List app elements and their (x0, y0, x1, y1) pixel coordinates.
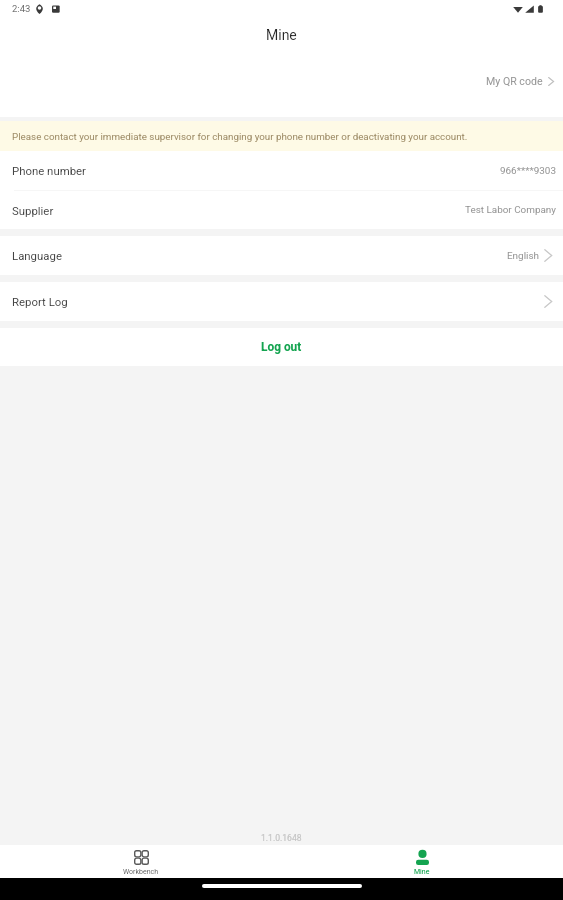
button[interactable]: Log out (0, 328, 563, 366)
button[interactable]: Phone number (0, 151, 563, 190)
staticText: Mine (266, 27, 297, 43)
staticText: Language (12, 249, 62, 262)
staticText: Test Labor Company (465, 204, 556, 216)
button[interactable]: My QR code (486, 72, 563, 90)
staticText: Report Log (12, 295, 68, 308)
staticText: Mine (414, 868, 430, 876)
button[interactable]: Language (0, 236, 563, 275)
staticText: English (507, 250, 539, 262)
button[interactable]: Workbench tab (0, 845, 281, 878)
staticText: Please contact your immediate supervisor… (12, 131, 468, 142)
button[interactable]: Mine tab (281, 845, 563, 878)
staticText: 2:43 (12, 3, 31, 14)
staticText: Workbench (123, 868, 159, 876)
staticText: My QR code (486, 75, 543, 87)
staticText: Phone number (12, 164, 86, 177)
staticText: 966****9303 (500, 165, 556, 177)
button[interactable]: Supplier (0, 191, 563, 229)
staticText: Supplier (12, 204, 54, 217)
button[interactable]: Report Log (0, 282, 563, 321)
staticText: 1.1.0.1648 (261, 833, 302, 843)
staticText: Log out (261, 340, 302, 354)
